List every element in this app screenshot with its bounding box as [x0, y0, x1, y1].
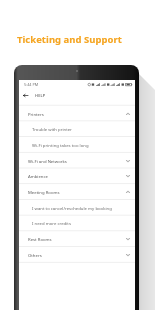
button[interactable]: Wi-Fi and Networks: [19, 153, 135, 168]
staticText: Rest Rooms: [28, 236, 52, 242]
staticText: 5:44 PM: [24, 82, 39, 87]
staticText: Wi-Fi and Networks: [28, 158, 67, 164]
button[interactable]: I need more credits: [19, 215, 135, 230]
button[interactable]: Others: [19, 247, 135, 262]
button[interactable]: Trouble with printer: [19, 121, 135, 136]
button[interactable]: I want to cancel/reschedule my booking: [19, 200, 135, 215]
button[interactable]: Meeting Rooms: [19, 184, 135, 199]
button[interactable]: Wi-Fi printing takes too long: [19, 137, 135, 152]
staticText: Printers: [28, 111, 44, 117]
button[interactable]: Back: [20, 90, 31, 101]
staticText: Others: [28, 252, 42, 258]
staticText: Ambience: [28, 173, 48, 179]
staticText: I want to cancel/reschedule my booking: [32, 205, 112, 211]
button[interactable]: Ambience: [19, 168, 135, 183]
staticText: Ticketing and Support: [17, 33, 122, 46]
button[interactable]: Back: [19, 87, 135, 104]
staticText: I need more credits: [32, 220, 71, 226]
staticText: Meeting Rooms: [28, 189, 60, 195]
button[interactable]: Rest Rooms: [19, 231, 135, 246]
button[interactable]: Printers: [19, 106, 135, 121]
staticText: Wi-Fi printing takes too long: [32, 142, 89, 148]
staticText: Trouble with printer: [32, 126, 72, 132]
staticText: HELP: [35, 93, 46, 98]
